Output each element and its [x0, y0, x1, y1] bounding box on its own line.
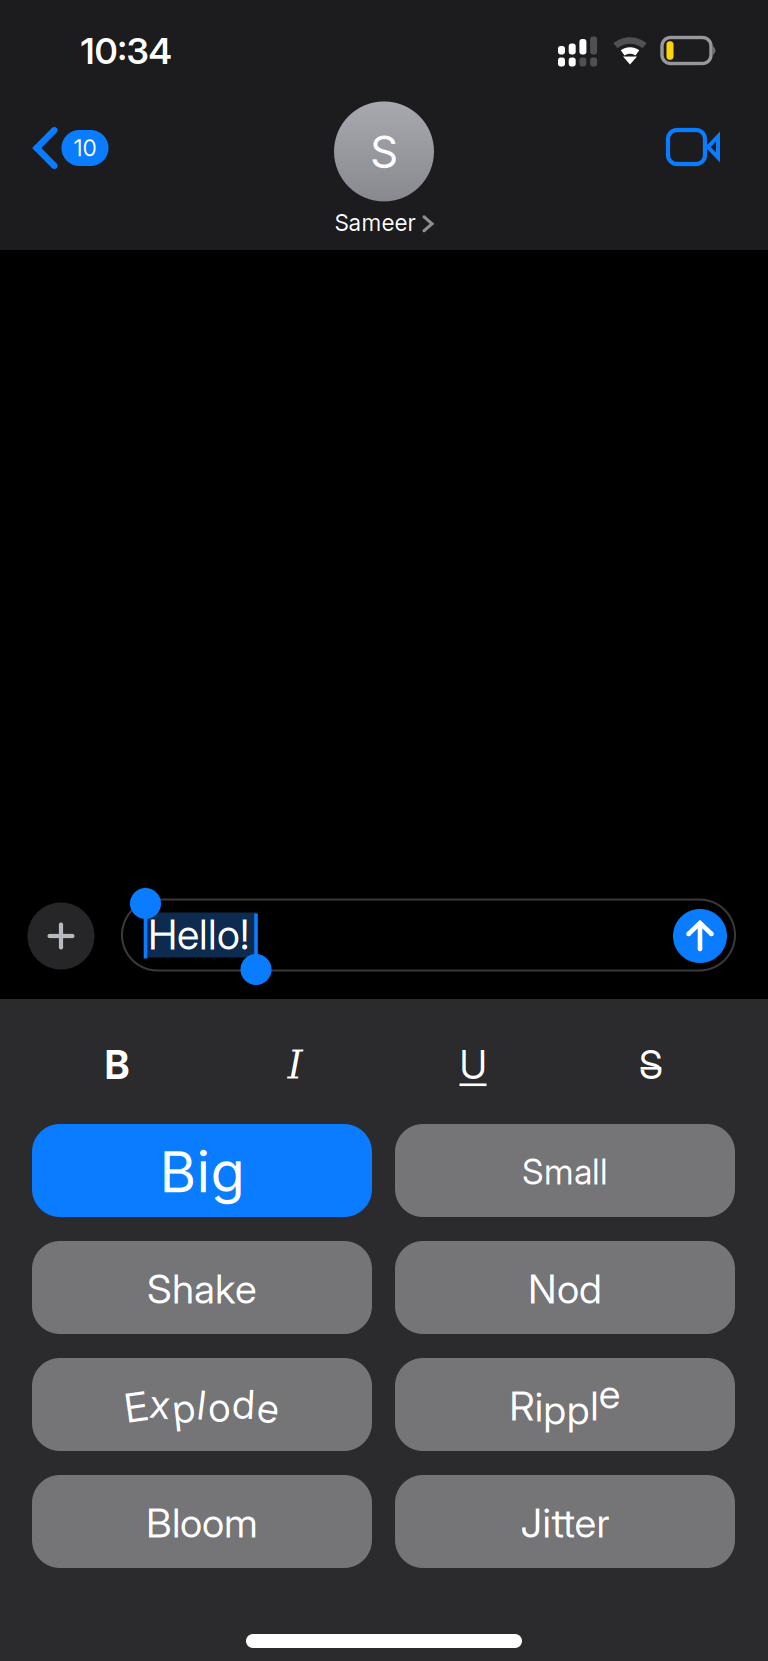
button[interactable]: Jitter	[395, 1475, 735, 1568]
button[interactable]: E	[32, 1358, 372, 1451]
staticText: i	[535, 1383, 543, 1431]
staticText: p	[543, 1386, 566, 1434]
staticText: B	[104, 1042, 129, 1088]
staticText: S	[639, 1042, 663, 1088]
button[interactable]: Underline	[413, 1027, 533, 1103]
staticText: Big	[159, 1139, 244, 1205]
button[interactable]: Bold	[57, 1027, 177, 1103]
button[interactable]: FaceTime video call	[664, 123, 724, 171]
staticText: p	[567, 1386, 590, 1434]
button[interactable]: Message text field, Hello! selected	[122, 899, 735, 970]
button[interactable]: R	[395, 1358, 735, 1451]
staticText: o	[208, 1383, 230, 1431]
staticText: Small	[522, 1152, 608, 1192]
button[interactable]: Send	[673, 909, 727, 963]
button[interactable]: Back	[33, 126, 109, 170]
button[interactable]: Add attachment	[27, 902, 94, 969]
staticText: e	[258, 1384, 280, 1432]
staticText: I	[287, 1042, 302, 1087]
staticText: Nod	[528, 1265, 602, 1313]
staticText: R	[509, 1382, 534, 1430]
staticText: x	[150, 1380, 170, 1428]
button[interactable]: Bloom	[32, 1475, 372, 1568]
staticText: E	[124, 1383, 147, 1431]
button[interactable]: Shake	[32, 1241, 372, 1334]
staticText: Shake	[147, 1265, 257, 1313]
staticText: S	[370, 125, 398, 177]
staticText: Jitter	[520, 1499, 609, 1547]
staticText: 10	[73, 135, 96, 161]
staticText: l	[197, 1381, 205, 1429]
button[interactable]: Small	[395, 1124, 735, 1217]
staticText: U	[459, 1042, 486, 1088]
staticText: Bloom	[146, 1499, 258, 1547]
staticText: 10:34	[80, 30, 171, 72]
button[interactable]: Italic	[235, 1027, 355, 1103]
button[interactable]: Nod	[395, 1241, 735, 1334]
button[interactable]: Sameer, conversation details	[334, 101, 434, 236]
staticText: e	[599, 1370, 621, 1418]
staticText: d	[232, 1380, 255, 1428]
staticText: p	[172, 1384, 195, 1432]
staticText: Sameer	[334, 209, 415, 236]
button[interactable]: Big	[32, 1124, 372, 1217]
button[interactable]: Strikethrough	[591, 1027, 711, 1103]
staticText: l	[590, 1382, 598, 1430]
staticText: Hello!	[148, 910, 249, 959]
